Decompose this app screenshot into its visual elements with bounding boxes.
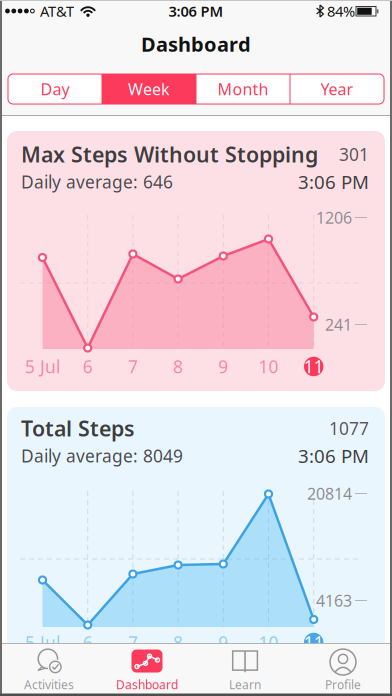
staticText: 1077 — [329, 417, 369, 440]
staticText: 20814 — [307, 483, 352, 504]
staticText: 6 — [83, 631, 93, 654]
staticText: 5 Jul — [25, 631, 60, 654]
staticText: Daily average: 646 — [21, 170, 173, 193]
staticText: Total Steps — [21, 414, 135, 442]
button[interactable]: Learn — [196, 644, 294, 696]
staticText: 9 — [218, 631, 228, 654]
staticText: 301 — [339, 143, 369, 166]
staticText: Dashboard — [116, 676, 178, 692]
staticText: 5 Jul — [25, 355, 60, 378]
staticText: Month — [217, 78, 268, 100]
staticText: Day — [40, 78, 69, 100]
button[interactable]: Dashboard — [98, 644, 196, 696]
staticText: 3:06 PM — [298, 169, 369, 194]
staticText: 7 — [128, 355, 138, 378]
staticText: Learn — [229, 676, 261, 692]
staticText: 9 — [218, 355, 228, 378]
button[interactable]: Activities — [0, 644, 98, 696]
staticText: 11 — [304, 631, 324, 654]
button[interactable]: Year — [290, 74, 384, 104]
staticText: Year — [320, 78, 353, 100]
staticText: 4163 — [316, 590, 352, 611]
staticText: 3:06 PM — [168, 1, 223, 21]
staticText: 8 — [173, 631, 183, 654]
staticText: 3:06 PM — [298, 443, 369, 468]
staticText: 7 — [128, 631, 138, 654]
staticText: 84% — [327, 1, 355, 21]
staticText: 11 — [304, 355, 324, 378]
staticText: Dashboard — [141, 31, 251, 57]
staticText: Profile — [325, 676, 361, 692]
staticText: Activities — [24, 676, 74, 692]
button[interactable]: Day — [8, 74, 102, 104]
button[interactable]: Week — [102, 74, 196, 104]
staticText: 241 — [325, 314, 352, 335]
staticText: Daily average: 8049 — [21, 444, 183, 467]
button[interactable]: Profile — [294, 644, 392, 696]
staticText: Week — [128, 78, 170, 100]
button[interactable]: Month — [196, 74, 290, 104]
staticText: 10 — [258, 631, 278, 654]
staticText: 8 — [173, 355, 183, 378]
staticText: Max Steps Without Stopping — [21, 140, 318, 168]
staticText: 10 — [258, 355, 278, 378]
staticText: 6 — [83, 355, 93, 378]
staticText: AT&T — [40, 1, 74, 21]
staticText: 1206 — [316, 207, 352, 228]
